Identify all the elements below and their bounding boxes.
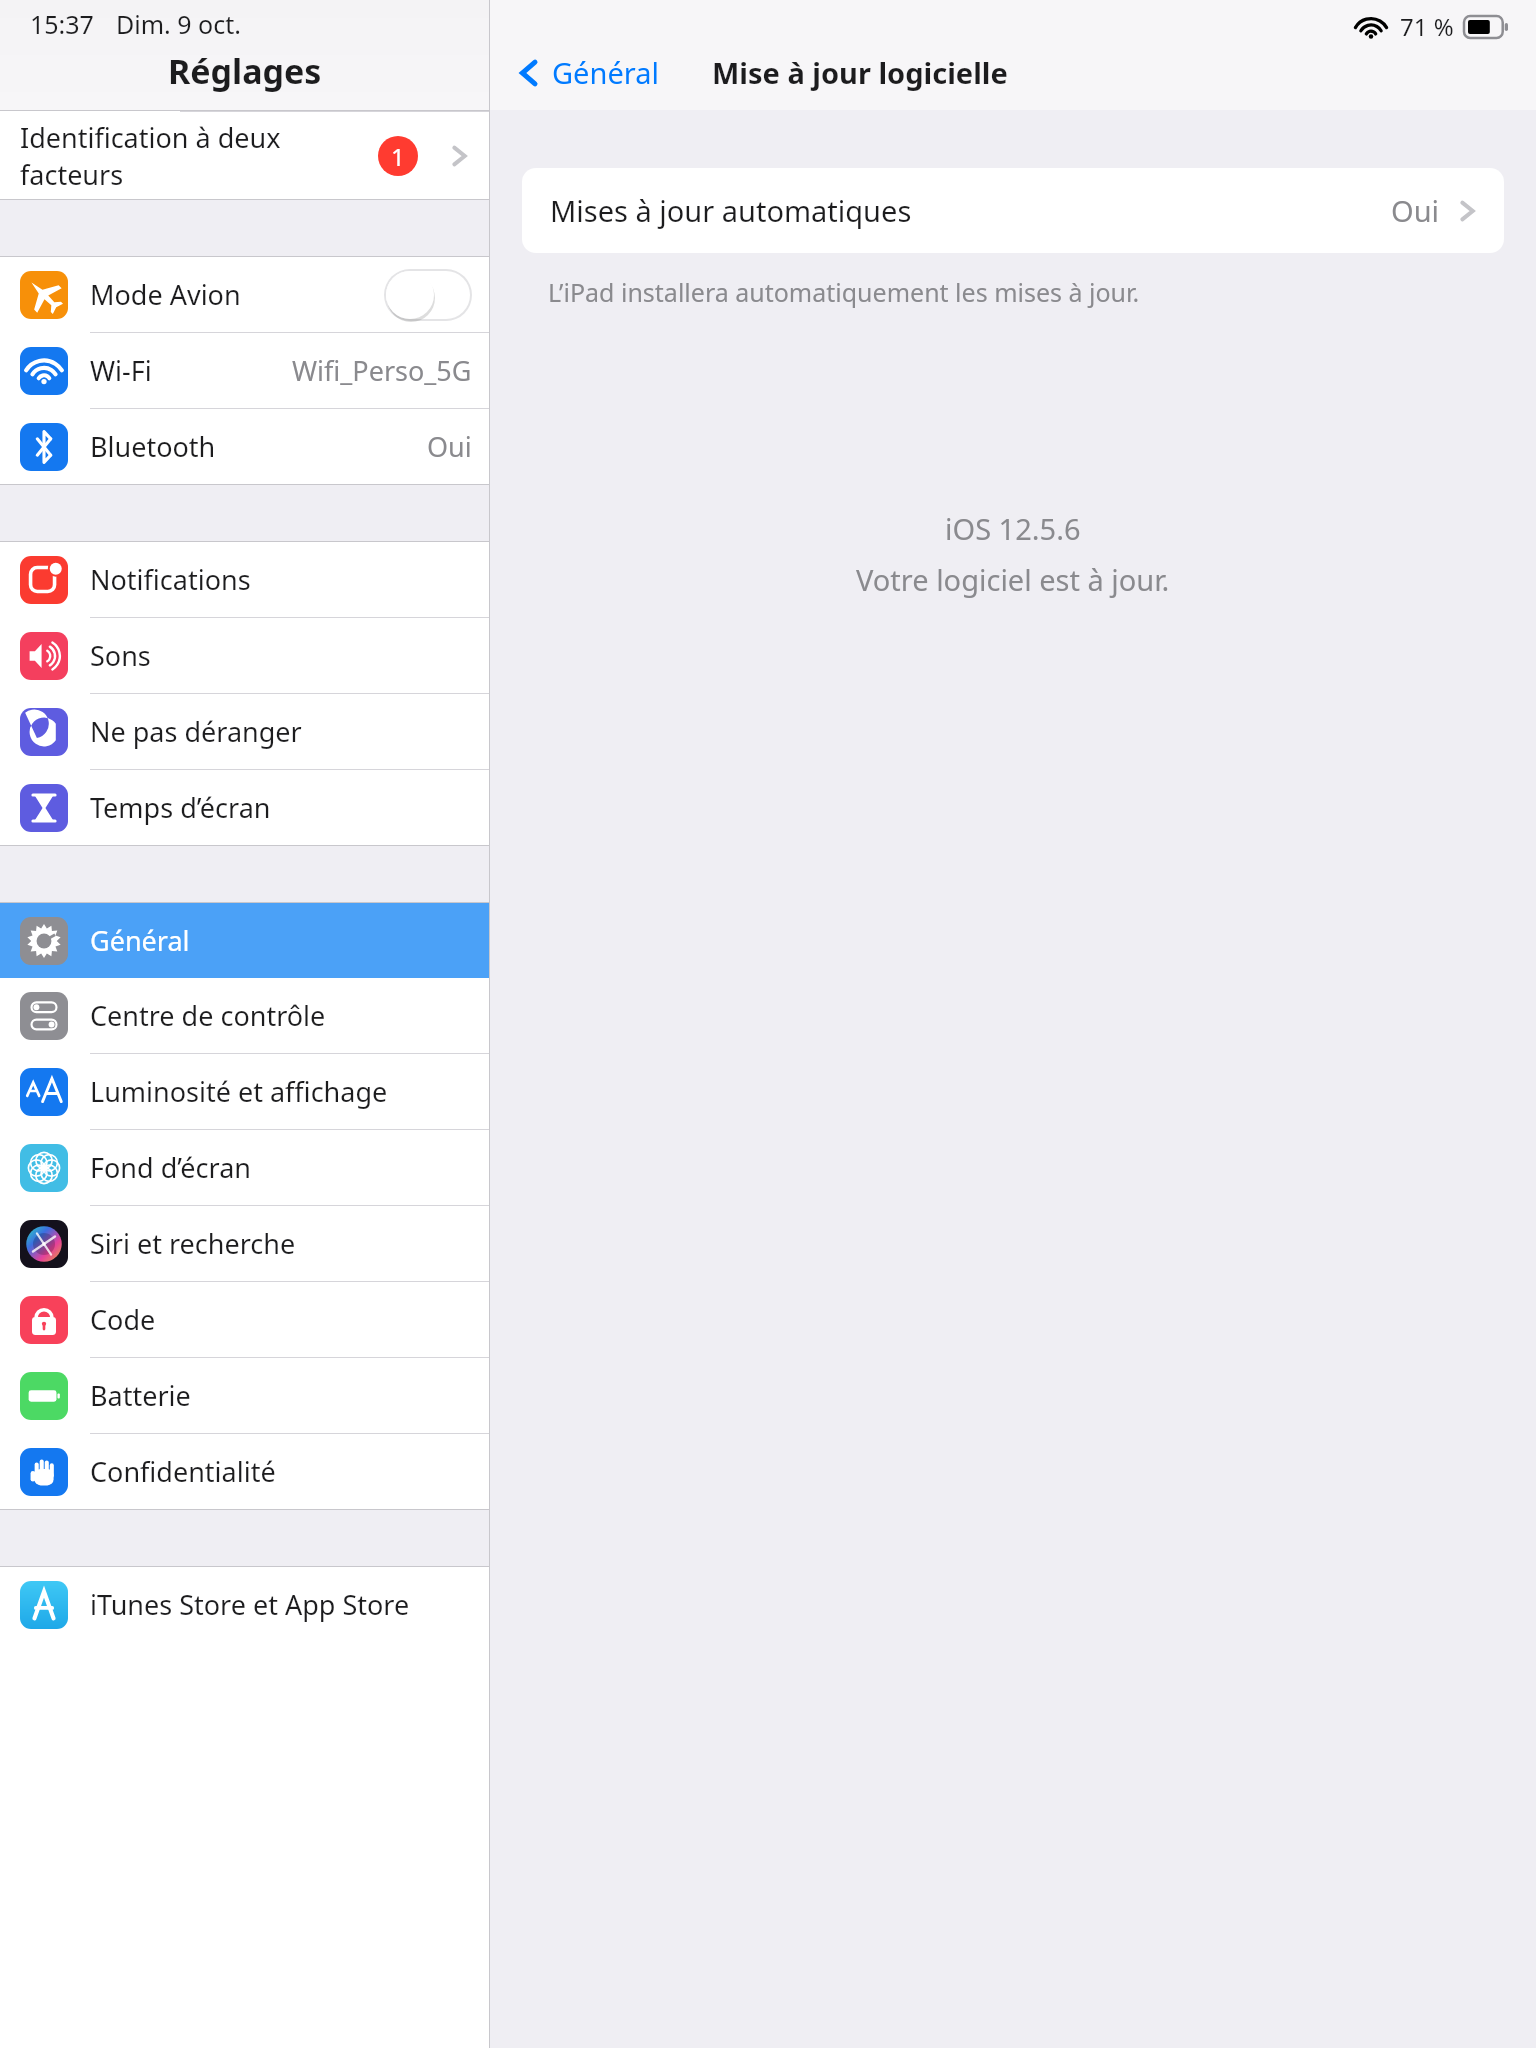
staticText: iOS 12.5.6 [945, 509, 1081, 548]
button[interactable]: Sons [0, 618, 490, 693]
button[interactable]: Confidentialité [0, 1434, 490, 1509]
staticText: Confidentialité [90, 1453, 472, 1490]
button[interactable]: Wi-Fi [0, 333, 490, 408]
staticText: Sons [90, 637, 472, 674]
staticText: Mises à jour automatiques [550, 191, 1391, 230]
button[interactable]: Identification à deux facteurs [0, 112, 490, 199]
button[interactable]: Siri et recherche [0, 1206, 490, 1281]
staticText: Centre de contrôle [90, 997, 472, 1034]
staticText: Wifi_Perso_5G [292, 352, 472, 389]
staticText: Général [552, 53, 659, 92]
staticText: Code [90, 1301, 472, 1338]
staticText: Général [90, 922, 472, 959]
staticText: Wi-Fi [90, 352, 292, 389]
staticText: Notifications [90, 561, 472, 598]
staticText: iTunes Store et App Store [90, 1586, 472, 1623]
staticText: Votre logiciel est à jour. [856, 560, 1170, 599]
staticText: 71 % [1400, 10, 1454, 43]
staticText: Identification à deux facteurs [20, 119, 378, 193]
staticText: Siri et recherche [90, 1225, 472, 1262]
staticText: Mode Avion [90, 276, 384, 313]
button[interactable]: Fond d’écran [0, 1130, 490, 1205]
staticText: Bluetooth [90, 428, 427, 465]
staticText: Oui [427, 428, 472, 465]
button[interactable]: Temps d’écran [0, 770, 490, 845]
button[interactable]: Luminosité et affichage [0, 1054, 490, 1129]
button[interactable]: Général [0, 903, 490, 978]
button[interactable]: Code [0, 1282, 490, 1357]
staticText: L’iPad installera automatiquement les mi… [548, 275, 1140, 309]
staticText: Batterie [90, 1377, 472, 1414]
button[interactable]: Batterie [0, 1358, 490, 1433]
staticText: Ne pas déranger [90, 713, 472, 750]
button[interactable]: iTunes Store et App Store [0, 1567, 490, 1642]
button[interactable]: Mode Avion [0, 257, 490, 332]
staticText: Oui [1391, 191, 1440, 230]
button[interactable]: Ne pas déranger [0, 694, 490, 769]
staticText: Luminosité et affichage [90, 1073, 472, 1110]
staticText: 1 [391, 140, 405, 173]
button[interactable]: Bluetooth [0, 409, 490, 484]
button[interactable]: Mises à jour automatiques [522, 168, 1504, 253]
staticText: Dim. 9 oct. [116, 7, 241, 41]
staticText: Temps d’écran [90, 789, 472, 826]
staticText: 15:37 [30, 7, 94, 41]
staticText: Réglages [168, 48, 322, 94]
button[interactable]: Centre de contrôle [0, 978, 490, 1053]
button[interactable]: Général [508, 49, 665, 96]
button[interactable]: Notifications [0, 542, 490, 617]
staticText: Fond d’écran [90, 1149, 472, 1186]
staticText: Mise à jour logicielle [712, 53, 1008, 92]
